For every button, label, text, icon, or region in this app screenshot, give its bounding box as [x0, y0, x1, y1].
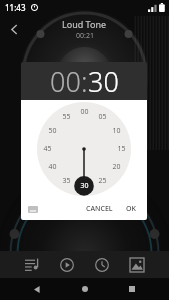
- staticText: 30: [80, 181, 89, 191]
- button[interactable]: Recents: [121, 278, 143, 300]
- staticText: 15: [117, 144, 126, 154]
- staticText: 45: [43, 144, 52, 154]
- button[interactable]: 30: [88, 63, 119, 100]
- staticText: 35: [62, 176, 71, 186]
- staticText: 55: [62, 112, 71, 122]
- button[interactable]: Play: [54, 252, 80, 278]
- staticText: 05: [98, 112, 107, 122]
- button[interactable]: Switch to keyboard input: [26, 202, 40, 216]
- staticText: CANCEL: [86, 204, 113, 214]
- button[interactable]: Playlist: [19, 252, 45, 278]
- staticText: Loud Tone: [62, 18, 107, 30]
- staticText: 00:21: [76, 31, 94, 41]
- button[interactable]: OK: [123, 201, 139, 217]
- staticText: 10: [112, 126, 121, 136]
- staticText: 25: [98, 176, 107, 186]
- staticText: OK: [126, 204, 136, 214]
- button[interactable]: Timer: [89, 252, 115, 278]
- button[interactable]: Back: [0, 15, 28, 43]
- button[interactable]: 00: [50, 63, 81, 100]
- staticText: 30: [88, 63, 119, 100]
- staticText: 20: [112, 162, 121, 172]
- staticText: 50: [48, 126, 57, 136]
- staticText: 00: [50, 63, 81, 100]
- staticText: :: [81, 63, 88, 100]
- button[interactable]: CANCEL: [83, 201, 116, 217]
- button[interactable]: Back: [26, 278, 48, 300]
- button[interactable]: Images: [124, 252, 150, 278]
- staticText: 11:43: [5, 2, 26, 13]
- staticText: 40: [48, 162, 57, 172]
- staticText: 00: [80, 107, 89, 117]
- button[interactable]: Home: [74, 278, 96, 300]
